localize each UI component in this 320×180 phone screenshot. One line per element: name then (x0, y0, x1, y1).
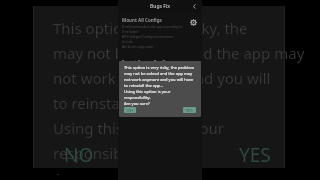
button[interactable]: YES (231, 142, 279, 164)
button[interactable]: YES (183, 107, 196, 113)
staticText: may not be solved and the app may (124, 71, 193, 76)
staticText: not work anymore and you will have (124, 77, 194, 82)
staticText: Using this option is your (124, 89, 171, 94)
staticText: Using this option is your (53, 118, 225, 138)
staticText: Export Server Configs (122, 59, 171, 65)
staticText: NO (127, 108, 134, 113)
staticText: NO (64, 142, 94, 164)
staticText: Are you sure? (124, 101, 150, 106)
button[interactable]: Export Server Configs (118, 57, 202, 79)
staticText: All the lists to the current configurate… (122, 67, 185, 71)
staticText: YES (186, 108, 193, 113)
staticText: This option is very risky, the problem (124, 65, 195, 70)
staticText: YES (239, 142, 271, 164)
staticText: responsibility. (53, 143, 151, 163)
staticText: be lists. (122, 40, 134, 44)
staticText: to reinstall the app... (124, 83, 164, 88)
staticText: not work anymore and you will have (53, 68, 305, 88)
staticText: responsibility. (124, 95, 151, 100)
staticText: Tree Select (122, 30, 139, 34)
button[interactable]: NO (58, 142, 100, 164)
button[interactable]: Mount All Configs (Privileged) (118, 15, 202, 52)
button[interactable]: Close (190, 2, 199, 11)
button[interactable]: Settings (188, 17, 198, 27)
staticText: Bugs Fix (150, 3, 170, 10)
button[interactable]: NO (124, 107, 136, 113)
staticText: may not be solved and the app may (53, 43, 305, 63)
staticText: to reinstall the app... (53, 93, 198, 113)
staticText: Mount All Configs (Privileged) (122, 17, 185, 23)
button[interactable]: Export file (188, 59, 198, 69)
staticText: All Privileged Configs environment optio… (122, 35, 185, 39)
staticText: Attributes copy state (122, 45, 153, 49)
staticText: If selected mods in the app according to… (122, 25, 185, 29)
staticText: Are you sure? (53, 168, 149, 175)
staticText: This option is very risky, the problem (53, 18, 305, 38)
staticText: configure all as exported as a file (122, 72, 172, 76)
